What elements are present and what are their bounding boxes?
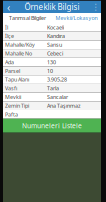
staticText: Örneklik Bilgisi: [24, 2, 79, 12]
staticText: Zemin Tipi: [5, 102, 29, 109]
staticText: İlçe: [5, 32, 14, 40]
staticText: Pafta: [5, 111, 18, 118]
staticText: Tarla: [47, 85, 59, 92]
staticText: İl: [5, 24, 8, 31]
staticText: Kocaeli: [47, 24, 64, 31]
button[interactable]: Mevkii/Lokasyon: [52, 13, 101, 23]
staticText: Mahalle/Köy: [5, 41, 35, 48]
staticText: Mahalle No: [5, 50, 32, 57]
button[interactable]: More: [90, 1, 101, 13]
staticText: Mevkii/Lokasyon: [55, 14, 97, 22]
staticText: Tarımsal Bilgiler: [9, 14, 46, 22]
button[interactable]: Back: [3, 1, 14, 13]
button[interactable]: Numuneleri Listele: [3, 119, 101, 133]
staticText: ‹: [7, 0, 10, 14]
staticText: Vasfı: [5, 85, 17, 92]
staticText: 130: [47, 59, 56, 66]
staticText: Ana Taşınmaz: [47, 102, 81, 109]
staticText: Mevkii: [5, 93, 21, 100]
staticText: Sarısu: [47, 41, 62, 48]
staticText: ⋮: [91, 2, 99, 12]
staticText: Numuneleri Listele: [22, 121, 82, 130]
staticText: Ada: [5, 59, 14, 66]
staticText: Tapu Alanı: [5, 76, 29, 83]
staticText: Kandıra: [47, 32, 65, 40]
staticText: 10: [47, 67, 53, 74]
staticText: Sarıcalar: [47, 93, 68, 100]
staticText: Parsel: [5, 67, 20, 74]
staticText: Cebeci: [47, 50, 63, 57]
button[interactable]: Tarımsal Bilgiler: [3, 13, 52, 23]
staticText: 3.905,28: [47, 76, 67, 83]
